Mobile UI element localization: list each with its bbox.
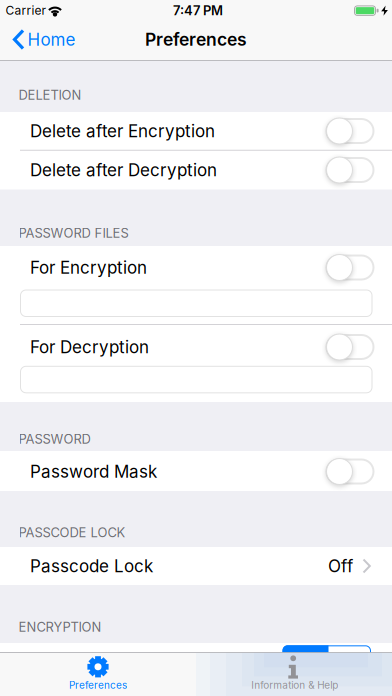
staticText: Off — [328, 556, 353, 576]
button[interactable]: Encryption password file — [20, 289, 372, 317]
staticText: Home — [27, 29, 75, 50]
button[interactable]: Back — [6, 22, 102, 57]
button[interactable]: For Encryption — [324, 251, 376, 283]
button[interactable]: Encryption option A (selected) — [282, 645, 328, 662]
button[interactable]: For Decryption — [324, 331, 376, 363]
staticText: Passcode Lock — [30, 556, 153, 576]
staticText: PASSWORD FILES — [18, 225, 128, 241]
staticText: Delete after Decryption — [30, 160, 217, 180]
button[interactable]: Information & Help tab — [196, 652, 392, 696]
staticText: Carrier — [5, 3, 46, 18]
staticText: Password Mask — [30, 461, 157, 482]
staticText: For Encryption — [30, 257, 147, 278]
staticText: For Decryption — [30, 337, 149, 357]
staticText: Preferences — [145, 29, 247, 50]
staticText: 7:47 PM — [173, 3, 223, 18]
button[interactable]: Preferences tab — [0, 652, 196, 696]
button[interactable]: Password Mask — [324, 455, 376, 487]
staticText: DELETION — [18, 87, 81, 103]
staticText: ENCRYPTION — [18, 619, 101, 635]
staticText: PASSCODE LOCK — [18, 525, 125, 540]
button[interactable]: Passcode Lock — [0, 547, 392, 585]
staticText: Preferences — [69, 679, 127, 691]
staticText: Delete after Encryption — [30, 121, 215, 141]
button[interactable]: Delete after Decryption — [324, 154, 376, 186]
staticText: Information & Help — [251, 679, 338, 691]
button[interactable]: Decryption password file — [20, 366, 372, 393]
button[interactable]: Encryption option B — [328, 645, 371, 662]
button[interactable]: Delete after Encryption — [324, 115, 376, 147]
staticText: PASSWORD — [18, 431, 90, 447]
